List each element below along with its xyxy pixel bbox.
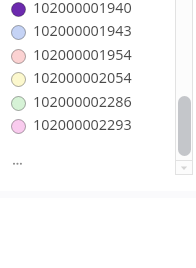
button[interactable]: 102000001940: [0, 0, 196, 21]
staticText: 102000002054: [33, 68, 132, 88]
button[interactable]: Scroll thumb: [178, 96, 191, 156]
staticText: 102000001943: [33, 21, 132, 41]
staticText: 102000002293: [33, 115, 132, 135]
button[interactable]: 102000002054: [0, 67, 196, 91]
button[interactable]: More: [8, 152, 28, 170]
button[interactable]: 102000001954: [0, 44, 196, 68]
button[interactable]: 102000001943: [0, 20, 196, 44]
staticText: 102000001940: [33, 0, 132, 18]
staticText: 102000001954: [33, 45, 132, 65]
button[interactable]: 102000002293: [0, 114, 196, 138]
button[interactable]: Scroll down: [175, 160, 193, 176]
staticText: 102000002286: [33, 92, 132, 112]
button[interactable]: 102000002286: [0, 91, 196, 115]
